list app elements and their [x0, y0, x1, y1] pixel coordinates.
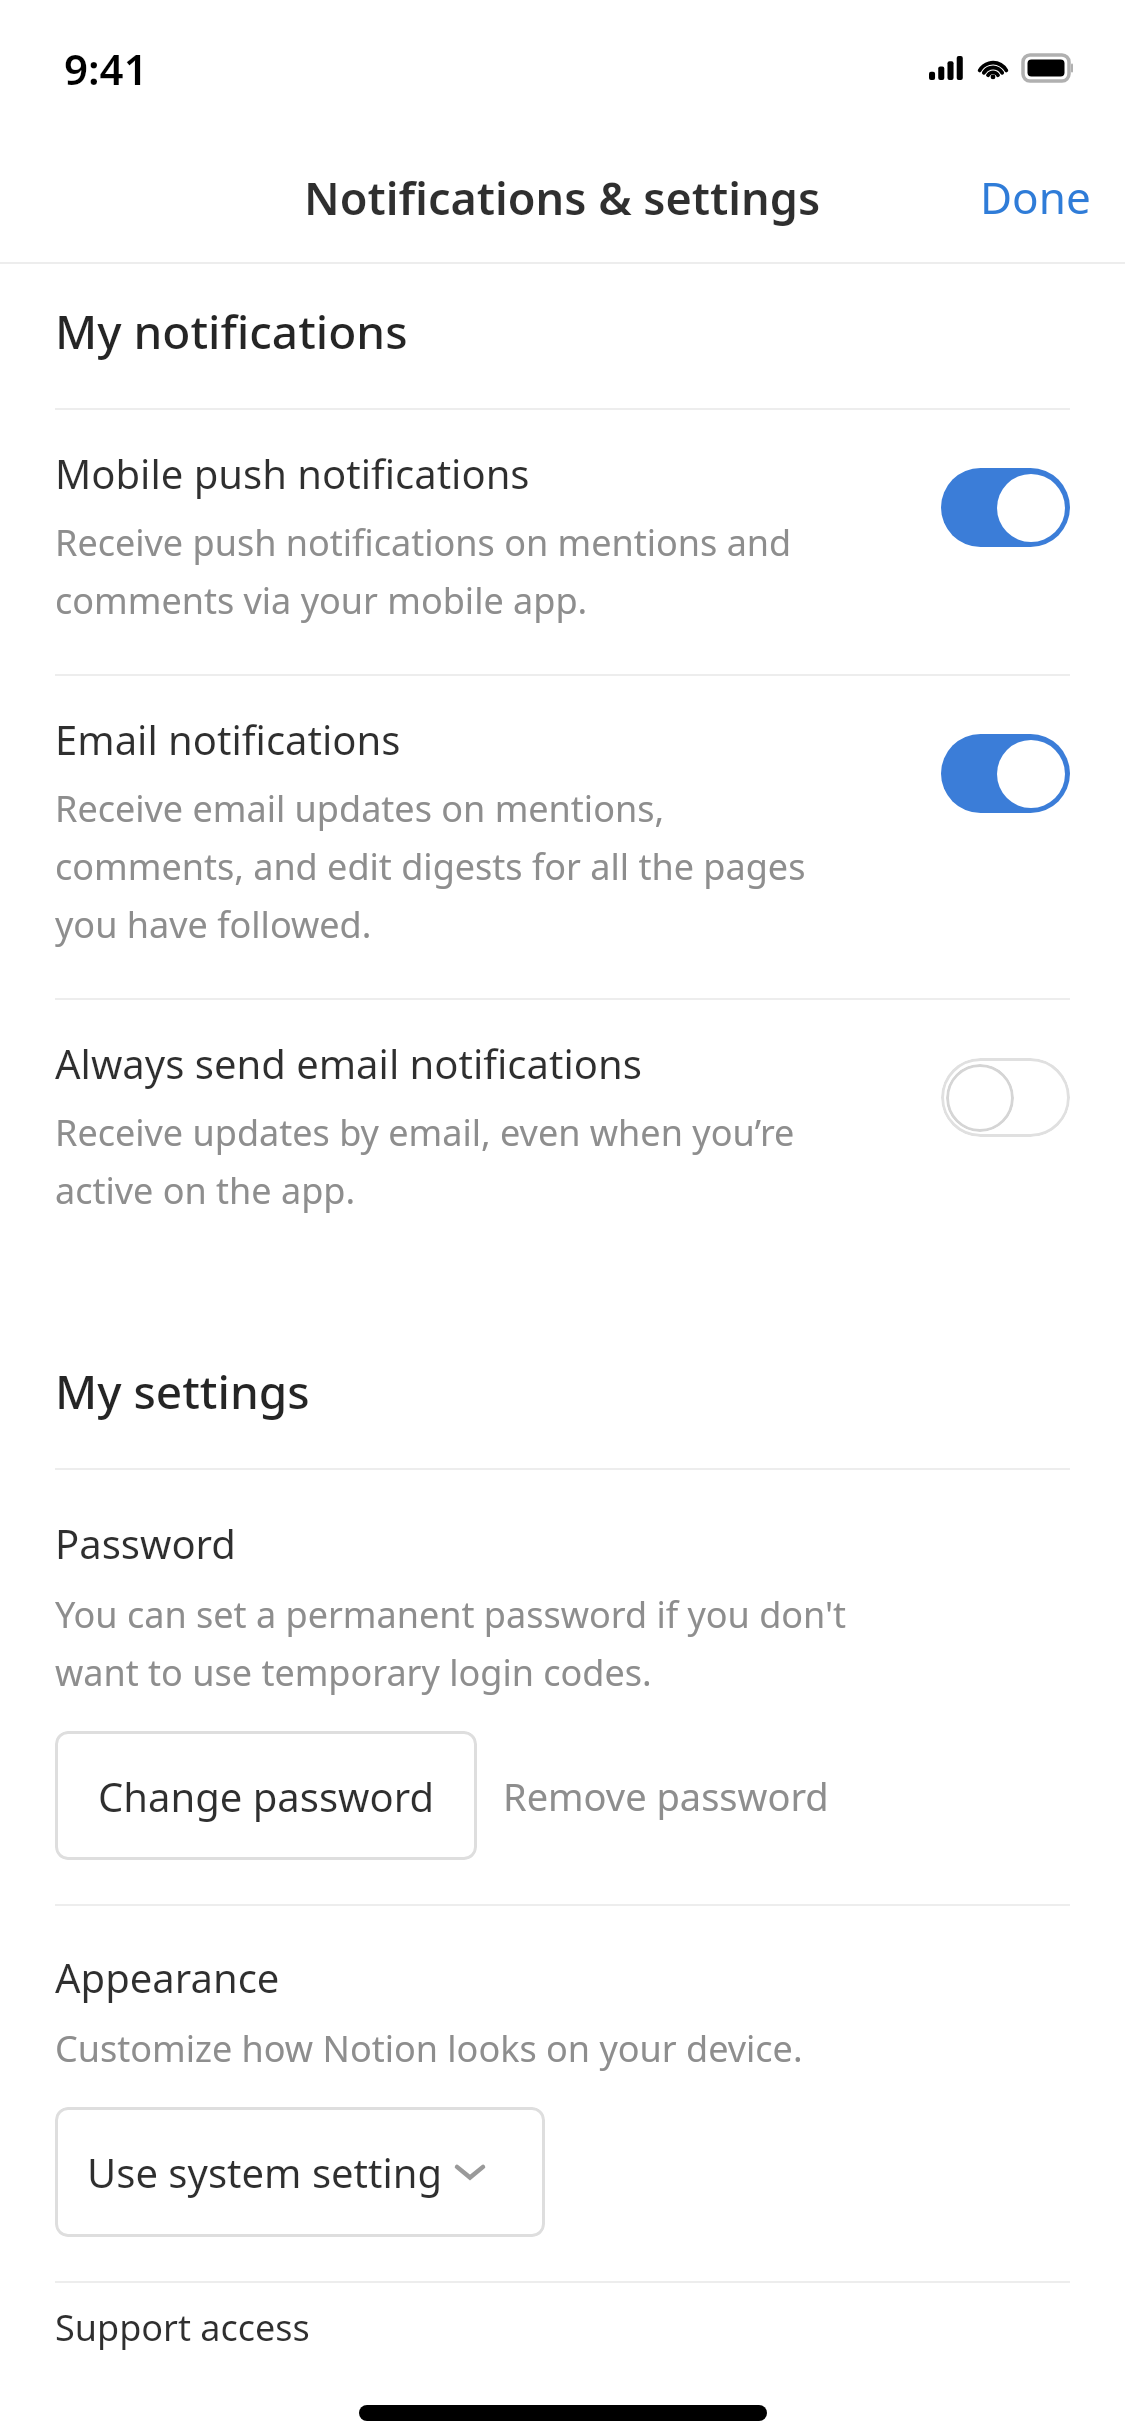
button[interactable]: Use system setting: [55, 2107, 545, 2237]
staticText: Use system setting: [87, 2145, 443, 2199]
staticText: My settings: [55, 1360, 310, 1423]
button[interactable]: Done: [946, 145, 1125, 249]
staticText: Notifications & settings: [304, 167, 821, 228]
staticText: Done: [980, 167, 1091, 227]
staticText: Receive email updates on mentions,: [55, 784, 665, 833]
staticText: Receive push notifications on mentions a…: [55, 518, 792, 567]
button[interactable]: Mobile push notifications: [0, 410, 1125, 674]
button[interactable]: Toggle on: [941, 734, 1070, 813]
button[interactable]: Toggle on: [941, 468, 1070, 547]
staticText: comments via your mobile app.: [55, 576, 588, 625]
staticText: Appearance: [55, 1950, 280, 2004]
staticText: Remove password: [503, 1770, 829, 1822]
staticText: 9:41: [64, 40, 148, 97]
staticText: Email notifications: [55, 712, 401, 766]
button[interactable]: Email notifications: [0, 676, 1125, 998]
staticText: Password: [55, 1516, 236, 1570]
staticText: Customize how Notion looks on your devic…: [55, 2024, 803, 2073]
staticText: Receive updates by email, even when you’…: [55, 1108, 795, 1157]
staticText: You can set a permanent password if you …: [55, 1590, 847, 1639]
staticText: you have followed.: [55, 900, 372, 949]
staticText: Support access: [55, 2303, 310, 2352]
button[interactable]: Toggle off: [941, 1058, 1070, 1137]
button[interactable]: Change password: [55, 1731, 477, 1860]
button[interactable]: Always send email notifications: [0, 1000, 1125, 1264]
staticText: active on the app.: [55, 1166, 356, 1215]
staticText: comments, and edit digests for all the p…: [55, 842, 806, 891]
staticText: Mobile push notifications: [55, 446, 530, 500]
staticText: Change password: [98, 1769, 435, 1823]
staticText: My notifications: [55, 300, 408, 363]
staticText: Always send email notifications: [55, 1036, 642, 1090]
staticText: want to use temporary login codes.: [55, 1648, 652, 1697]
button[interactable]: Remove password: [477, 1750, 855, 1842]
